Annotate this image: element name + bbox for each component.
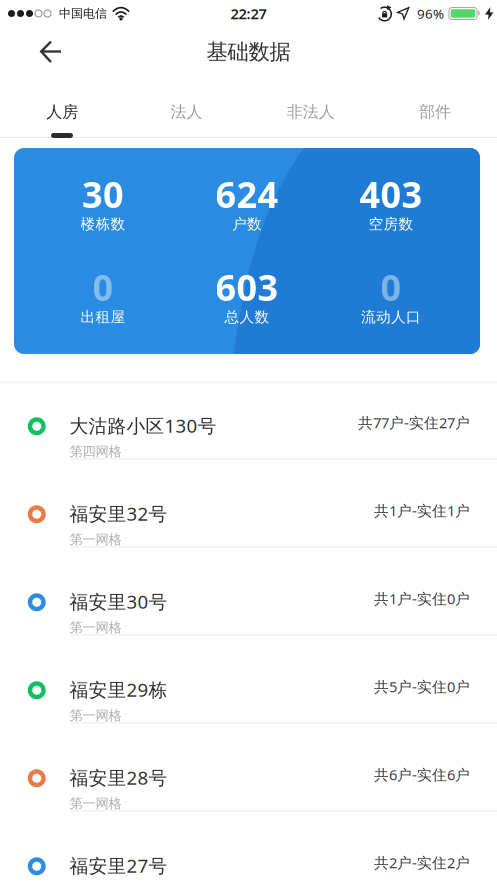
- staticText: 非法人: [287, 102, 335, 122]
- staticText: 403: [359, 170, 422, 218]
- staticText: 共77户-实住27户: [358, 413, 470, 432]
- staticText: 福安里28号: [69, 765, 167, 790]
- staticText: 共5户-实住0户: [374, 677, 470, 696]
- staticText: 福安里29栋: [69, 677, 167, 702]
- button[interactable]: 福安里29栋: [0, 647, 497, 735]
- staticText: 0: [92, 263, 113, 311]
- staticText: 福安里32号: [69, 501, 167, 526]
- staticText: 0: [380, 263, 401, 311]
- staticText: 大沽路小区130号: [69, 413, 216, 438]
- staticText: 部件: [419, 102, 451, 122]
- staticText: 基础数据: [206, 39, 290, 65]
- staticText: 总人数: [224, 308, 269, 326]
- staticText: 603: [215, 263, 278, 311]
- staticText: 第四网格: [69, 443, 121, 460]
- button[interactable]: 非法人: [248, 77, 373, 138]
- staticText: 第一网格: [69, 619, 121, 636]
- staticText: 流动人口: [361, 308, 421, 326]
- staticText: 第一网格: [69, 795, 121, 812]
- staticText: 624: [215, 170, 278, 218]
- staticText: 共1户-实住0户: [374, 589, 470, 608]
- staticText: 第一网格: [69, 707, 121, 724]
- button[interactable]: 福安里28号: [0, 735, 497, 823]
- button[interactable]: 法人: [124, 77, 248, 138]
- button[interactable]: 福安里27号: [0, 823, 497, 883]
- staticText: 楼栋数: [80, 215, 125, 233]
- staticText: 22:27: [230, 4, 266, 23]
- staticText: 96%: [417, 5, 444, 22]
- staticText: 人房: [46, 102, 78, 122]
- staticText: 户数: [232, 215, 262, 233]
- button[interactable]: 返回: [0, 27, 78, 77]
- button[interactable]: 人房: [0, 77, 124, 138]
- button[interactable]: 福安里30号: [0, 559, 497, 647]
- staticText: 第一网格: [69, 531, 121, 548]
- staticText: 共2户-实住2户: [374, 853, 470, 872]
- button[interactable]: 福安里32号: [0, 471, 497, 559]
- staticText: 空房数: [368, 215, 413, 233]
- staticText: 中国电信: [59, 6, 107, 21]
- staticText: 出租屋: [80, 308, 125, 326]
- button[interactable]: 大沽路小区130号: [0, 383, 497, 471]
- staticText: 共1户-实住1户: [374, 501, 470, 520]
- staticText: 30: [82, 170, 124, 218]
- staticText: 共6户-实住6户: [374, 765, 470, 784]
- staticText: 法人: [170, 102, 202, 122]
- staticText: 福安里27号: [69, 853, 167, 878]
- button[interactable]: 部件: [373, 77, 497, 138]
- staticText: 福安里30号: [69, 589, 167, 614]
